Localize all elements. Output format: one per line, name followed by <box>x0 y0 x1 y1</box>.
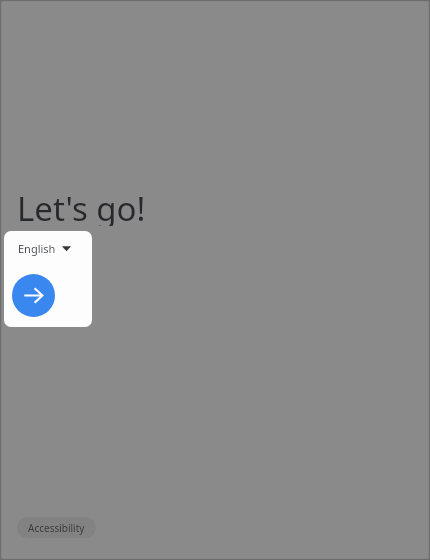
staticText: Accessibility <box>28 521 85 535</box>
staticText: Let's go! <box>17 186 146 226</box>
button[interactable]: English <box>18 235 77 261</box>
button[interactable]: Accessibility <box>17 517 96 538</box>
button[interactable]: Next <box>12 274 55 317</box>
staticText: English <box>18 241 56 256</box>
